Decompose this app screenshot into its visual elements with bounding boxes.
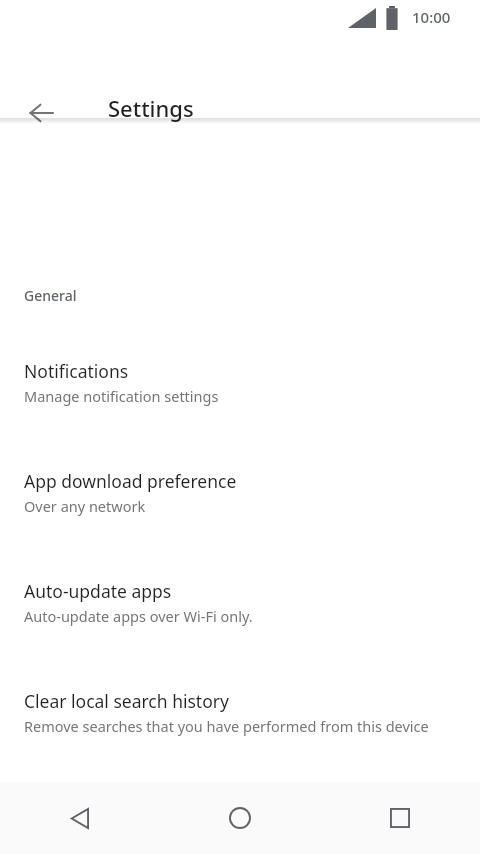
staticText: Remove searches that you have performed … [24, 716, 429, 736]
staticText: Settings [108, 93, 194, 123]
staticText: 10:00 [412, 7, 451, 27]
staticText: Auto-update apps [24, 579, 172, 603]
staticText: Notifications [24, 359, 129, 383]
button[interactable]: App download preference [0, 467, 480, 530]
button[interactable]: Auto-update apps [0, 577, 480, 640]
button[interactable]: Notifications [0, 357, 480, 420]
button[interactable]: Home [160, 782, 320, 854]
staticText: App download preference [24, 469, 237, 493]
staticText: General [24, 286, 77, 305]
staticText: Over any network [24, 496, 146, 516]
button[interactable]: Back [0, 782, 160, 854]
button[interactable]: Back [17, 89, 65, 137]
staticText: Clear local search history [24, 689, 229, 713]
button[interactable]: Recents [320, 782, 480, 854]
button[interactable]: Clear local search history [0, 687, 480, 750]
staticText: Auto-update apps over Wi-Fi only. [24, 606, 253, 626]
staticText: Manage notification settings [24, 386, 219, 406]
